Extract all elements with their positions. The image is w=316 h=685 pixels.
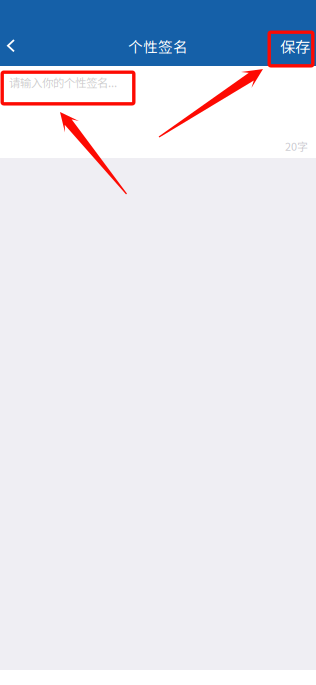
staticText: 20字: [285, 138, 308, 154]
button[interactable]: 保存: [268, 31, 314, 67]
button[interactable]: Back: [0, 0, 38, 66]
staticText: 个性签名: [128, 35, 188, 57]
staticText: 保存: [280, 35, 310, 57]
button[interactable]: 请输入你的个性签名...: [0, 66, 316, 128]
staticText: 请输入你的个性签名...: [9, 74, 117, 91]
